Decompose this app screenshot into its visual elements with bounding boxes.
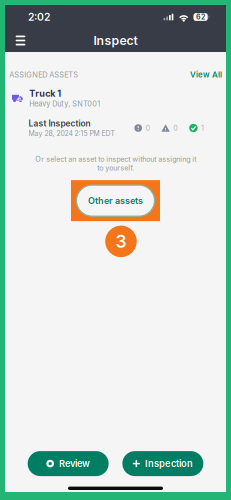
staticText: Review (59, 458, 90, 469)
button[interactable]: Inspection (122, 451, 203, 476)
staticText: Other assets (88, 195, 143, 206)
staticText: ASSIGNED ASSETS (9, 70, 78, 79)
button[interactable]: Other assets (71, 180, 160, 221)
staticText: Heavy Duty, SNT001 (29, 99, 100, 108)
staticText: 3 (115, 231, 126, 252)
staticText: Last Inspection (28, 118, 90, 129)
button[interactable]: Menu (10, 29, 30, 52)
staticText: May 28, 2024 2:15 PM EDT (28, 129, 114, 138)
staticText: View All (190, 70, 222, 79)
staticText: Inspection (145, 458, 193, 469)
button[interactable]: Review (28, 451, 109, 476)
staticText: 62 (196, 13, 205, 21)
staticText: 1 (201, 124, 204, 132)
staticText: Inspect (93, 33, 137, 48)
staticText: Or select an asset to inspect without as… (35, 155, 196, 172)
button[interactable]: View All (190, 70, 222, 79)
staticText: 2:02 (28, 11, 50, 23)
staticText: Truck 1 (29, 88, 61, 99)
staticText: 0 (145, 124, 150, 132)
staticText: 0 (173, 124, 178, 132)
